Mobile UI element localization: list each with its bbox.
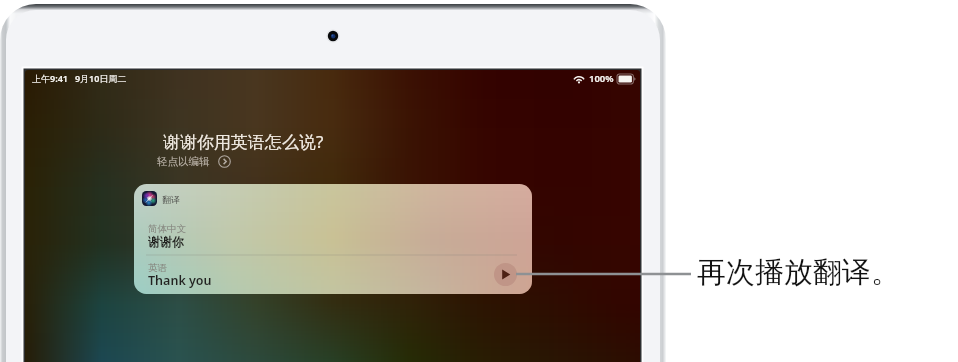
staticText: 轻点以编辑	[157, 155, 210, 168]
button[interactable]: 播放翻译	[494, 263, 517, 286]
staticText: 英语	[148, 262, 167, 274]
staticText: 谢谢你用英语怎么说?	[163, 130, 324, 153]
button[interactable]: 轻点以编辑	[157, 155, 231, 168]
staticText: 上午9:41 9月10日周二	[32, 72, 127, 84]
staticText: 谢谢你	[148, 234, 184, 249]
staticText: 简体中文	[148, 223, 186, 235]
staticText: 100%	[589, 72, 614, 85]
staticText: Thank you	[148, 272, 212, 289]
staticText: 翻译	[162, 194, 180, 205]
button[interactable]: 翻译	[134, 184, 532, 294]
staticText: 再次播放翻译。	[697, 254, 900, 291]
